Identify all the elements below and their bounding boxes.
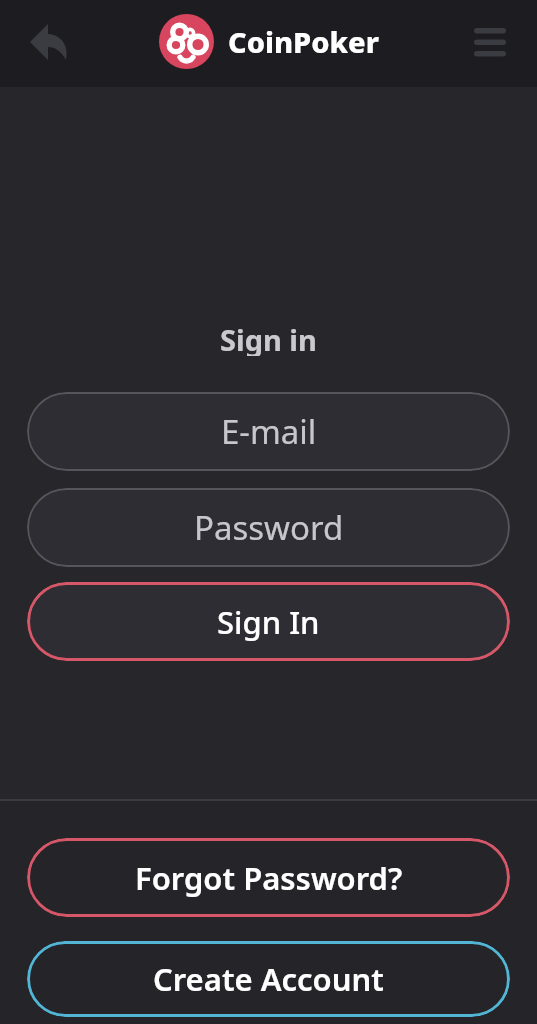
staticText: E-mail bbox=[221, 409, 317, 454]
button[interactable]: Forgot Password? bbox=[27, 838, 510, 917]
staticText: Sign In bbox=[217, 601, 320, 643]
staticText: Create Account bbox=[153, 958, 384, 1000]
button[interactable]: E-mail bbox=[27, 392, 510, 471]
staticText: Password bbox=[194, 505, 344, 550]
button[interactable]: Password bbox=[27, 488, 510, 567]
button[interactable] bbox=[462, 14, 518, 70]
staticText: CoinPoker bbox=[228, 22, 379, 61]
button[interactable]: Sign In bbox=[27, 582, 510, 661]
button[interactable] bbox=[18, 14, 74, 70]
button[interactable]: Create Account bbox=[27, 941, 510, 1017]
staticText: Sign in bbox=[220, 320, 317, 356]
staticText: Forgot Password? bbox=[135, 857, 403, 899]
